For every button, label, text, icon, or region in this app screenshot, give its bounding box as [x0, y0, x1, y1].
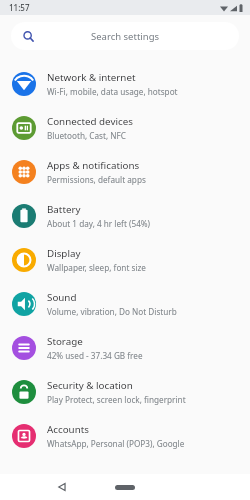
- staticText: 42% used - 37.34 GB free: [47, 350, 143, 361]
- staticText: Battery: [47, 203, 81, 216]
- button[interactable]: Display: [0, 238, 250, 282]
- staticText: Display: [47, 247, 81, 260]
- staticText: About 1 day, 4 hr left (54%): [47, 218, 151, 229]
- button[interactable]: Search settings: [11, 22, 239, 50]
- staticText: Apps & notifications: [47, 159, 140, 172]
- staticText: Accounts: [47, 423, 89, 436]
- staticText: Network & internet: [47, 71, 136, 84]
- button[interactable]: Storage: [0, 326, 250, 370]
- button[interactable]: Battery: [0, 194, 250, 238]
- button[interactable]: Sound: [0, 282, 250, 326]
- staticText: Bluetooth, Cast, NFC: [47, 130, 126, 141]
- button[interactable]: Accounts: [0, 414, 250, 458]
- staticText: Wi-Fi, mobile, data usage, hotspot: [47, 86, 178, 97]
- staticText: Wallpaper, sleep, font size: [47, 262, 146, 273]
- staticText: Permissions, default apps: [47, 174, 146, 185]
- staticText: Storage: [47, 335, 83, 348]
- staticText: Sound: [47, 291, 77, 304]
- staticText: Connected devices: [47, 115, 133, 128]
- staticText: WhatsApp, Personal (POP3), Google: [47, 438, 185, 449]
- button[interactable]: Apps & notifications: [0, 150, 250, 194]
- staticText: Play Protect, screen lock, fingerprint: [47, 394, 186, 405]
- button[interactable]: Network & internet: [0, 62, 250, 106]
- staticText: 11:57: [9, 2, 30, 13]
- button[interactable]: Connected devices: [0, 106, 250, 150]
- button[interactable]: Back: [52, 477, 72, 497]
- staticText: Volume, vibration, Do Not Disturb: [47, 306, 177, 317]
- staticText: Search settings: [91, 30, 160, 43]
- button[interactable]: Security & location: [0, 370, 250, 414]
- staticText: Security & location: [47, 379, 133, 392]
- button[interactable]: Home: [108, 479, 142, 495]
